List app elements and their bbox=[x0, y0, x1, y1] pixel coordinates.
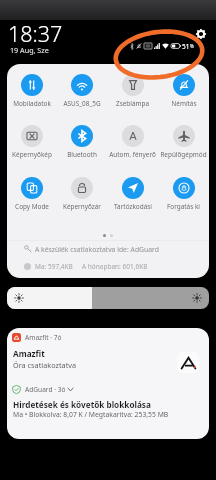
staticText: Copy Mode bbox=[15, 202, 49, 211]
staticText: Tartózkodási bbox=[114, 202, 152, 211]
button[interactable]: Autom. fényerő bbox=[107, 125, 158, 159]
button[interactable]: AdGuard · 3ó bbox=[7, 378, 209, 439]
button[interactable]: Amazfit · 7ó bbox=[7, 328, 209, 378]
staticText: 19 Aug, Sze bbox=[10, 45, 49, 55]
staticText: 18:37 bbox=[8, 19, 63, 48]
staticText: ASUS_08_5G bbox=[63, 99, 101, 108]
staticText: A készülék csatlakoztatva ide: AdGuard bbox=[35, 245, 159, 254]
button[interactable]: Zseblámpa bbox=[107, 74, 158, 108]
staticText: Hirdetések és követők blokkolása bbox=[13, 399, 151, 410]
staticText: Repülőgépmód bbox=[160, 150, 207, 159]
button[interactable]: Copy Mode bbox=[7, 177, 57, 211]
staticText: Képernyőkép bbox=[12, 150, 52, 159]
button[interactable]: Képernyőkép bbox=[7, 125, 57, 159]
staticText: Mobiladatok bbox=[13, 99, 51, 108]
staticText: Képernyőzár bbox=[63, 202, 101, 211]
staticText: Ma • Blokkolva: 8,07 K / Megtakarítva: 2… bbox=[13, 410, 169, 419]
staticText: Óra csatlakoztatva bbox=[13, 360, 77, 370]
staticText: Némítás bbox=[171, 99, 197, 108]
button[interactable]: Forgatás ki bbox=[158, 177, 209, 211]
staticText: AdGuard · 3ó bbox=[25, 385, 66, 394]
button[interactable]: Settings bbox=[196, 29, 206, 39]
staticText: Amazfit bbox=[13, 348, 45, 359]
staticText: Bluetooth bbox=[67, 150, 97, 159]
button[interactable]: Repülőgépmód bbox=[158, 125, 209, 159]
staticText: % bbox=[190, 43, 194, 49]
button[interactable]: Némítás bbox=[158, 74, 209, 108]
staticText: Forgatás ki bbox=[167, 202, 200, 211]
button[interactable]: Bluetooth bbox=[57, 125, 107, 159]
staticText: Amazfit · 7ó bbox=[25, 333, 62, 342]
button[interactable] bbox=[7, 287, 209, 309]
button[interactable]: Mobiladatok bbox=[7, 74, 57, 108]
button[interactable]: Tartózkodási bbox=[107, 177, 158, 211]
button[interactable]: ASUS_08_5G bbox=[57, 74, 107, 108]
staticText: 51 bbox=[182, 42, 190, 50]
button[interactable]: Képernyőzár bbox=[57, 177, 107, 211]
staticText: Autom. fényerő bbox=[109, 150, 156, 159]
staticText: Ma: 597,4KB bbox=[35, 262, 73, 271]
staticText: Zseblámpa bbox=[116, 99, 149, 108]
staticText: A hónapban: 601,6KB bbox=[82, 262, 148, 271]
